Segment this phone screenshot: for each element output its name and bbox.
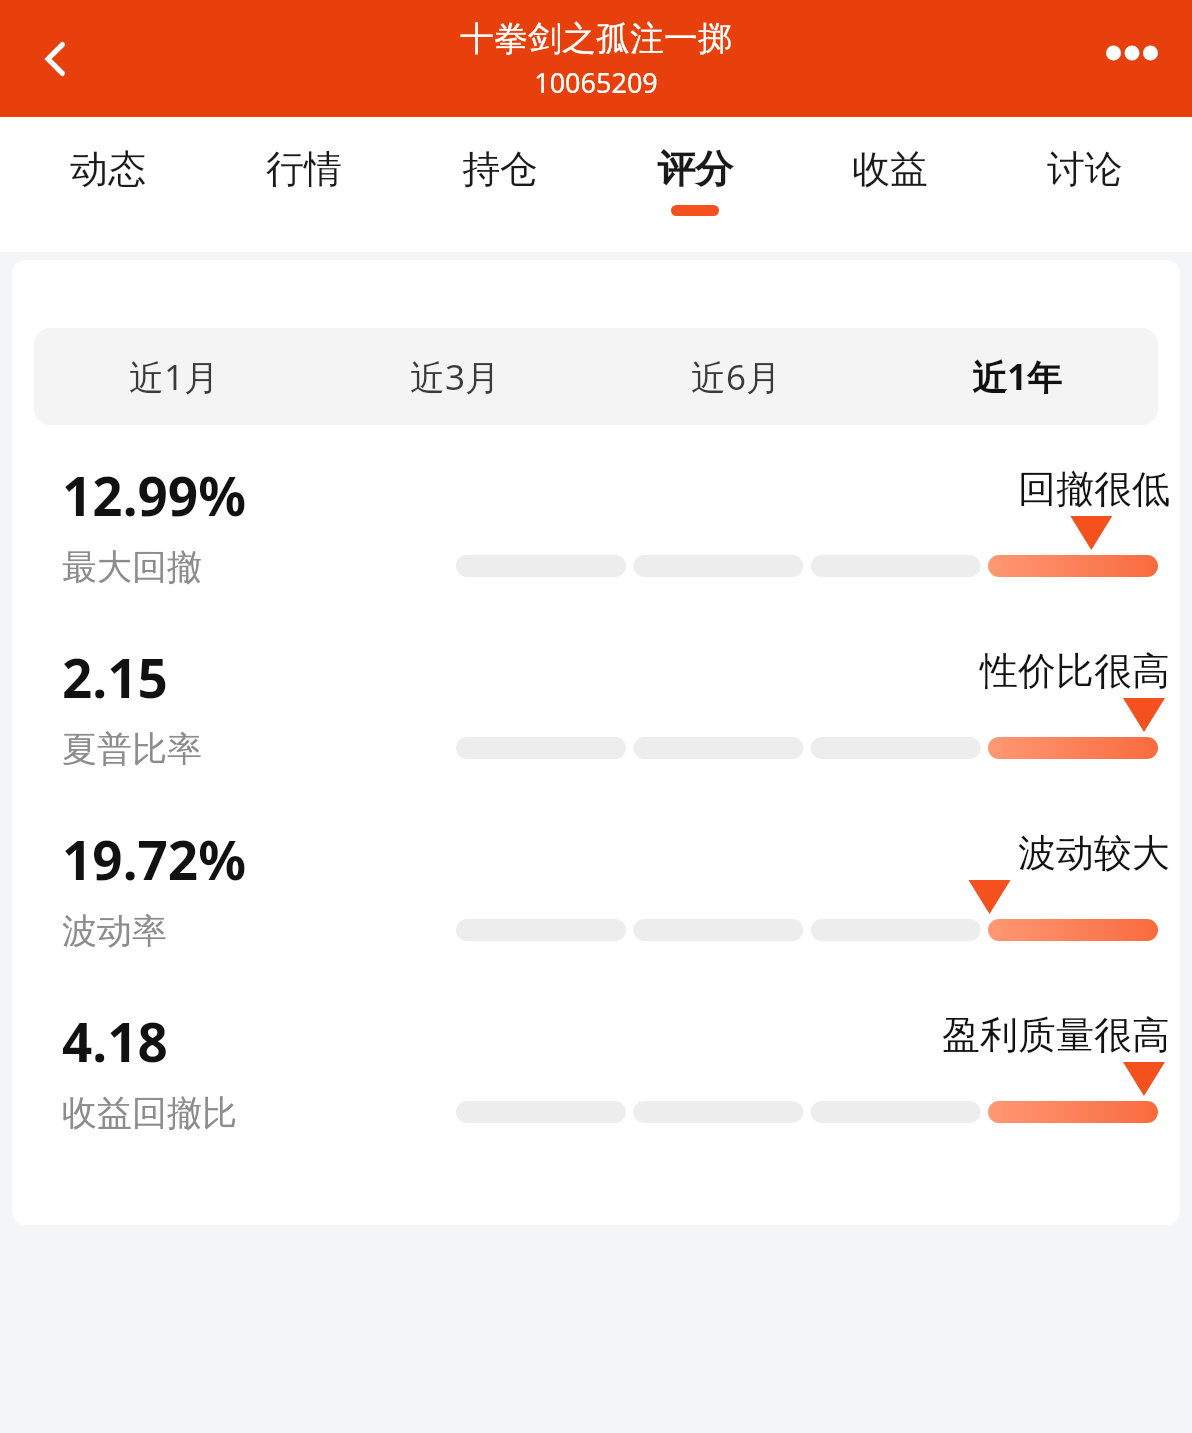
button[interactable]: 19.72% [12,823,1180,953]
button[interactable]: 近6月 [596,328,877,425]
staticText: 十拳剑之孤注一掷 [460,17,732,60]
staticText: 近6月 [691,353,782,401]
staticText: 讨论 [1047,145,1123,193]
staticText: 10065209 [534,64,658,101]
staticText: 回撤很低 [1018,465,1170,513]
button[interactable]: 近1月 [34,328,315,425]
button[interactable]: 动态 [10,117,206,252]
staticText: 行情 [266,145,342,193]
staticText: 评分 [657,145,733,193]
staticText: 12.99% [62,459,246,531]
button[interactable]: 持仓 [402,117,597,252]
button[interactable]: 评分 [597,117,792,252]
staticText: 波动率 [62,909,167,953]
button[interactable]: 12.99% [12,459,1180,589]
staticText: 动态 [70,145,146,193]
button[interactable]: 近3月 [315,328,596,425]
staticText: 收益 [852,145,928,193]
staticText: 近1年 [972,353,1063,401]
staticText: 盈利质量很高 [942,1011,1170,1059]
staticText: 性价比很高 [980,647,1170,695]
button[interactable]: 讨论 [987,117,1182,252]
staticText: 夏普比率 [62,727,202,771]
staticText: 持仓 [462,145,538,193]
button[interactable]: 近1年 [877,328,1158,425]
button[interactable]: More options [1096,17,1168,89]
button[interactable]: Back [20,23,92,95]
staticText: 近3月 [410,353,501,401]
staticText: 收益回撤比 [62,1091,237,1135]
staticText: 波动较大 [1018,829,1170,877]
staticText: 19.72% [62,823,246,895]
button[interactable]: 4.18 [12,1005,1180,1135]
button[interactable]: 2.15 [12,641,1180,771]
staticText: 最大回撤 [62,545,202,589]
button[interactable]: 行情 [206,117,402,252]
button[interactable]: 收益 [792,117,987,252]
staticText: 2.15 [62,641,168,713]
staticText: 近1月 [129,353,220,401]
staticText: 4.18 [62,1005,168,1077]
